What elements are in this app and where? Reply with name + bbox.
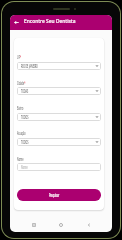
staticText: Bairro [17, 105, 24, 111]
button[interactable]: Recent apps [30, 221, 38, 229]
staticText: Atuação [17, 130, 26, 136]
staticText: Nome [17, 156, 24, 162]
button[interactable]: Pesquisar [17, 189, 101, 201]
staticText: TODOS [21, 139, 29, 145]
button[interactable]: TODOS [21, 138, 99, 146]
button[interactable]: RIO DE JANEIRO [21, 62, 99, 70]
staticText: TODAS [21, 88, 28, 94]
button[interactable]: Home [57, 221, 65, 229]
button[interactable]: Back [10, 15, 112, 30]
staticText: Pesquisar [49, 192, 59, 198]
button[interactable]: Back [85, 221, 93, 229]
button[interactable]: Nome [21, 163, 99, 171]
staticText: UF* [17, 54, 21, 60]
staticText: Nome [21, 164, 28, 170]
button[interactable]: TODAS [21, 87, 99, 95]
button[interactable]: TODOS [21, 113, 99, 121]
button[interactable]: Back [10, 15, 23, 30]
staticText: Encontre Seu Dentista [24, 16, 76, 24]
staticText: Cidade* [17, 80, 26, 86]
staticText: TODOS [21, 114, 29, 120]
staticText: RIO DE JANEIRO [21, 63, 38, 69]
